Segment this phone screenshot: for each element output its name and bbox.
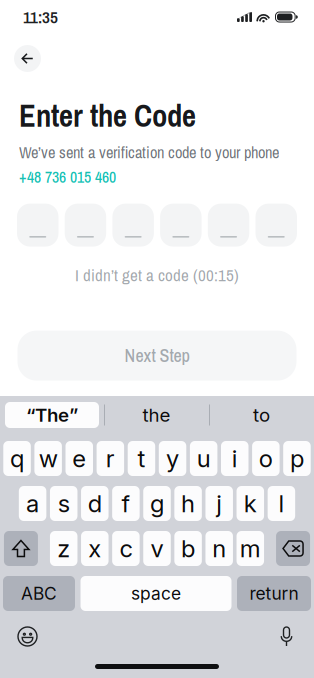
button[interactable]: j — [205, 486, 233, 521]
staticText: Enter the Code — [19, 95, 196, 136]
button[interactable]: Next Step — [17, 331, 296, 381]
button[interactable]: n — [205, 531, 233, 566]
button[interactable]: q — [3, 441, 31, 476]
staticText: x — [88, 534, 101, 563]
staticText: f — [121, 489, 130, 518]
staticText: r — [106, 444, 115, 473]
button[interactable]: a — [19, 486, 46, 521]
button[interactable]: h — [174, 486, 202, 521]
button[interactable]: space — [80, 576, 231, 611]
staticText: u — [197, 444, 211, 473]
button[interactable]: Shift — [4, 531, 38, 566]
staticText: w — [39, 444, 58, 473]
button[interactable]: s — [50, 486, 77, 521]
staticText: v — [150, 534, 163, 563]
staticText: p — [290, 444, 304, 473]
staticText: space — [131, 583, 181, 604]
staticText: o — [259, 444, 273, 473]
staticText: return — [249, 583, 298, 604]
button[interactable]: Emoji keyboard — [11, 620, 44, 653]
button[interactable]: d — [81, 486, 108, 521]
button[interactable]: return — [237, 576, 311, 611]
staticText: 11:35 — [23, 5, 58, 29]
staticText: q — [10, 444, 24, 473]
staticText: I didn’t get a code (00:15) — [75, 264, 239, 287]
button[interactable]: g — [143, 486, 171, 521]
staticText: l — [278, 489, 284, 518]
staticText: d — [88, 489, 102, 518]
button[interactable]: k — [236, 486, 264, 521]
staticText: g — [150, 489, 164, 518]
button[interactable]: p — [283, 441, 311, 476]
button[interactable]: Delete — [276, 531, 310, 566]
button[interactable]: y — [159, 441, 186, 476]
button[interactable]: f — [112, 486, 140, 521]
staticText: We’ve sent a verification code to your p… — [19, 141, 279, 163]
staticText: s — [58, 489, 70, 518]
staticText: y — [166, 444, 179, 473]
button[interactable]: Dictation — [273, 620, 300, 653]
staticText: n — [212, 534, 226, 563]
staticText: Next Step — [124, 343, 189, 368]
button[interactable]: u — [190, 441, 217, 476]
button[interactable]: I didn’t get a code (00:15) — [75, 267, 239, 284]
staticText: m — [240, 534, 261, 563]
button[interactable]: to — [209, 399, 314, 431]
button[interactable]: Back — [14, 45, 41, 72]
staticText: a — [26, 489, 39, 518]
button[interactable]: e — [65, 441, 93, 476]
staticText: “The” — [26, 404, 78, 426]
button[interactable]: ABC — [3, 576, 75, 611]
staticText: i — [232, 444, 238, 473]
button[interactable]: l — [268, 486, 295, 521]
button[interactable]: x — [81, 531, 108, 566]
button[interactable]: v — [143, 531, 171, 566]
staticText: ABC — [21, 583, 57, 604]
button[interactable]: z — [50, 531, 77, 566]
staticText: +48 736 015 460 — [19, 166, 116, 188]
button[interactable]: w — [34, 441, 62, 476]
button[interactable]: r — [97, 441, 124, 476]
staticText: z — [57, 534, 70, 563]
staticText: to — [253, 404, 270, 426]
button[interactable]: i — [221, 441, 248, 476]
button[interactable]: “The” — [0, 399, 104, 431]
button[interactable]: c — [112, 531, 140, 566]
button[interactable]: the — [104, 399, 209, 431]
staticText: the — [142, 404, 170, 426]
button[interactable]: b — [174, 531, 202, 566]
staticText: j — [216, 489, 222, 518]
button[interactable]: t — [128, 441, 155, 476]
staticText: h — [181, 489, 195, 518]
staticText: k — [244, 489, 257, 518]
button[interactable]: m — [236, 531, 264, 566]
staticText: e — [72, 444, 86, 473]
staticText: t — [137, 444, 145, 473]
staticText: b — [181, 534, 195, 563]
staticText: c — [119, 534, 132, 563]
button[interactable]: o — [252, 441, 280, 476]
